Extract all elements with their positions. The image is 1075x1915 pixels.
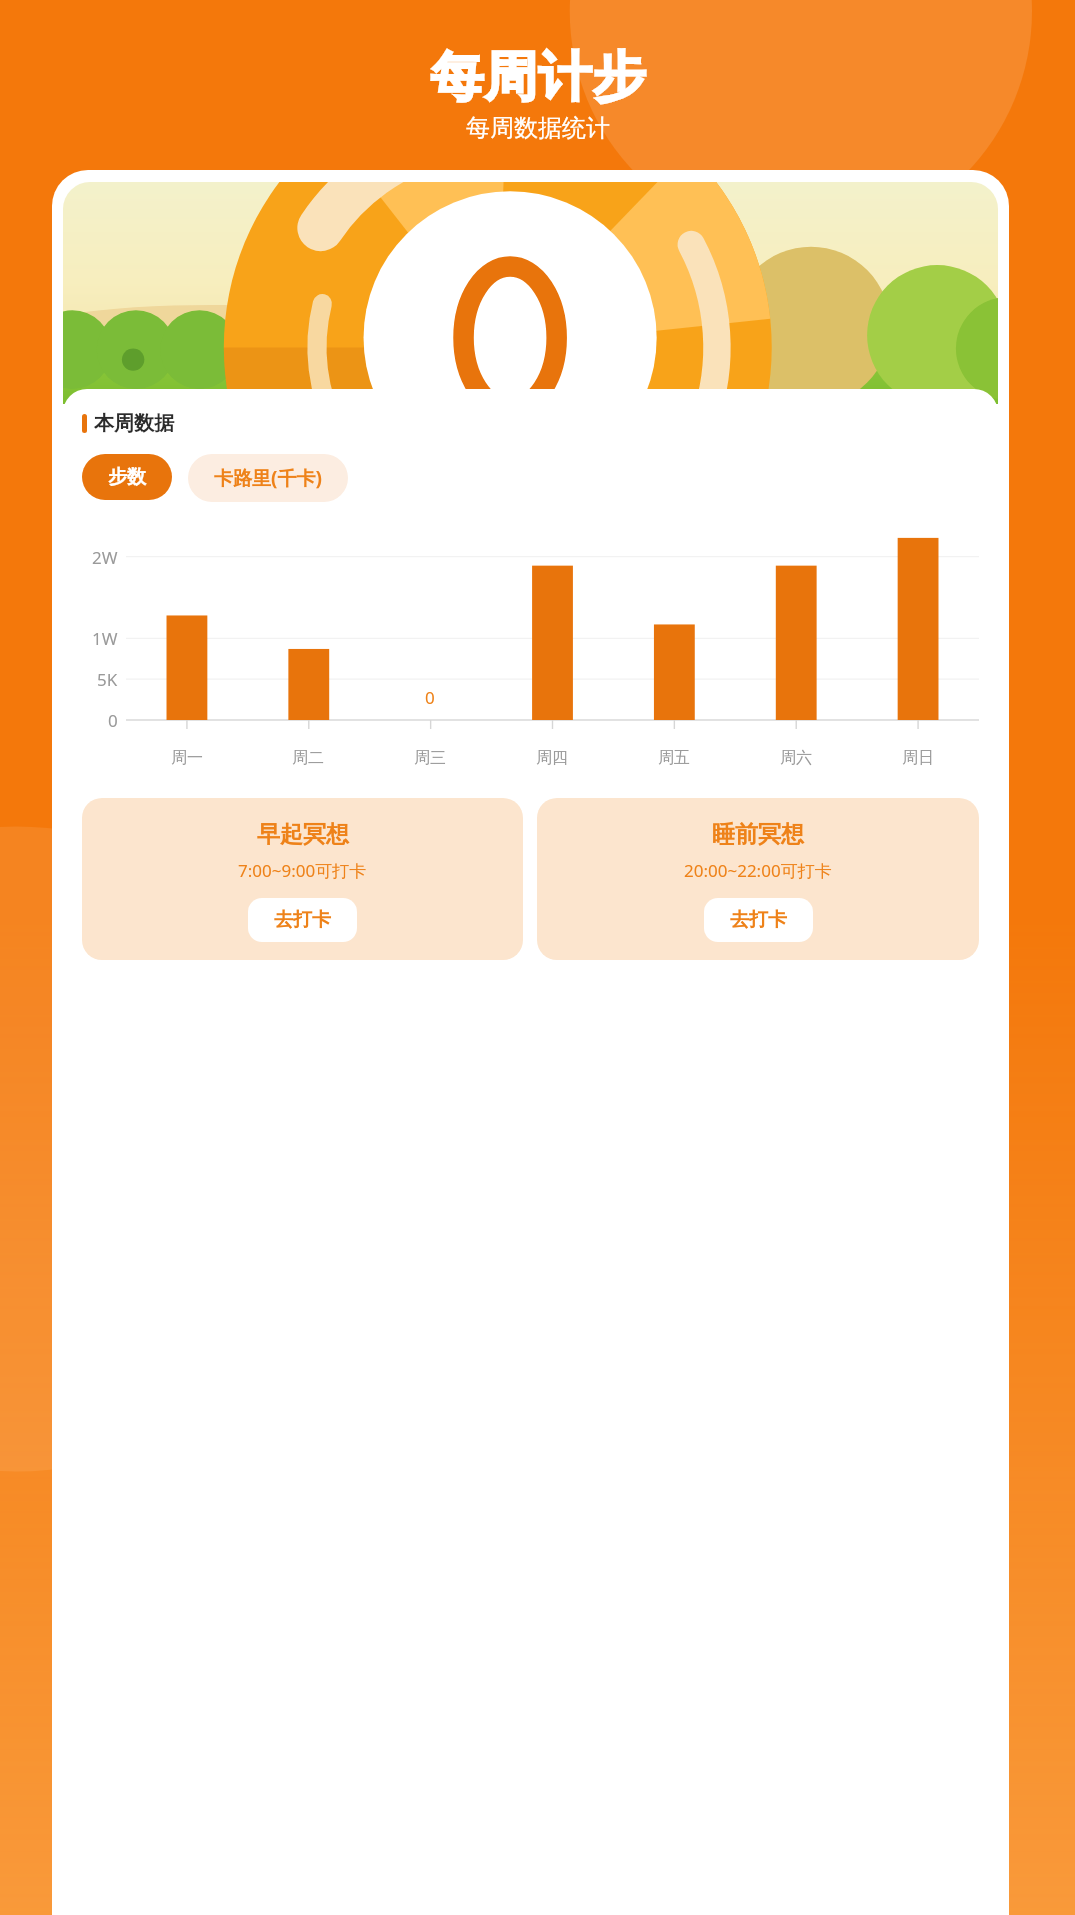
button[interactable]: 去打卡 xyxy=(704,898,813,942)
staticText: 去打卡 xyxy=(730,908,787,932)
button[interactable]: 步数 xyxy=(82,454,172,500)
staticText: 周六 xyxy=(780,748,812,768)
staticText: 周三 xyxy=(414,748,446,768)
staticText: 步数 xyxy=(108,465,146,489)
staticText: 睡前冥想 xyxy=(712,820,804,849)
staticText: 每周数据统计 xyxy=(466,113,610,143)
button[interactable]: 去打卡 xyxy=(248,898,357,942)
staticText: 周五 xyxy=(658,748,690,768)
staticText: 每周计步 xyxy=(430,44,646,111)
staticText: 周四 xyxy=(536,748,568,768)
staticText: 0 xyxy=(108,709,118,732)
button[interactable]: 早起冥想 xyxy=(82,798,523,960)
staticText: 0 xyxy=(425,686,435,709)
staticText: 20:00~22:00可打卡 xyxy=(684,859,832,882)
button[interactable]: 卡路里(千卡) xyxy=(188,454,348,502)
staticText: 1W xyxy=(92,627,118,650)
staticText: 去打卡 xyxy=(274,908,331,932)
staticText: 周日 xyxy=(902,748,934,768)
staticText: 2W xyxy=(92,546,118,569)
staticText: 5K xyxy=(97,668,118,691)
staticText: 早起冥想 xyxy=(257,820,349,849)
staticText: 7:00~9:00可打卡 xyxy=(238,859,367,882)
button[interactable]: 睡前冥想 xyxy=(537,798,979,960)
staticText: 周一 xyxy=(171,748,203,768)
staticText: 周二 xyxy=(292,748,324,768)
staticText: 本周数据 xyxy=(94,411,174,436)
staticText: 卡路里(千卡) xyxy=(214,465,322,491)
